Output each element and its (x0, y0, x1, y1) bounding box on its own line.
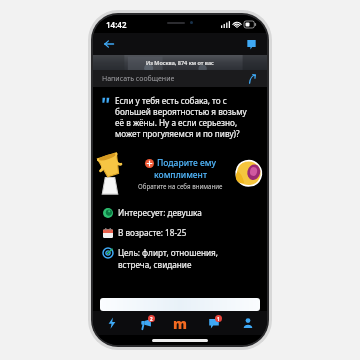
button[interactable]: Announcements (131, 311, 161, 335)
staticText: 2 (150, 316, 153, 322)
staticText: Подарите ему (157, 157, 216, 169)
staticText: Если у тебя есть собака, то с большей ве… (115, 95, 256, 139)
button[interactable]: В возрасте: 18-25 (103, 227, 257, 238)
staticText: комплимент (154, 169, 207, 181)
button[interactable]: Back (99, 34, 119, 54)
button[interactable]: Chat (241, 34, 261, 54)
other: Send (245, 72, 259, 86)
staticText: В возрасте: 18-25 (118, 227, 187, 238)
button[interactable] (100, 298, 260, 311)
staticText: Интересует: девушка (118, 207, 202, 218)
button[interactable]: Подарите ему (134, 155, 227, 192)
button[interactable]: Messages (199, 311, 229, 335)
staticText: 14:42 (106, 19, 127, 30)
staticText: m (173, 314, 187, 333)
button[interactable]: Написать сообщение (93, 70, 267, 87)
staticText: 1 (217, 316, 220, 322)
button[interactable]: Интересует: девушка (103, 207, 257, 218)
staticText: Обратите на себя внимание (138, 182, 223, 190)
button[interactable]: Boosts (97, 311, 127, 335)
button[interactable]: Home (165, 311, 195, 335)
button[interactable]: Profile (233, 311, 263, 335)
staticText: Написать сообщение (102, 74, 175, 84)
staticText: Из Москва, 874 км от вас (146, 59, 214, 66)
button[interactable]: Цель: флирт, отношения, (103, 247, 257, 270)
staticText: встреча, свидание (118, 259, 192, 270)
staticText: Цель: флирт, отношения, (118, 247, 219, 258)
